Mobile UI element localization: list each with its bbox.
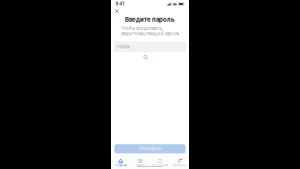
staticText: Чтобы продолжить, введите ваш текущий па… xyxy=(121,26,179,36)
staticText: Отправить xyxy=(139,146,161,151)
staticText: 9:41 xyxy=(116,1,125,7)
button[interactable]: Поддержка xyxy=(150,159,169,167)
button[interactable]: Закрыть xyxy=(113,8,120,14)
staticText: Поддержка xyxy=(152,164,168,167)
staticText: Профиль xyxy=(173,164,186,167)
button[interactable]: Главная xyxy=(111,159,130,167)
staticText: Пароль xyxy=(117,44,130,49)
staticText: Каталог xyxy=(135,164,145,167)
button[interactable]: Отправить xyxy=(114,144,186,153)
staticText: Главная xyxy=(115,164,126,167)
staticText: Введите пароль xyxy=(125,16,175,23)
button[interactable]: Каталог xyxy=(130,159,150,167)
button[interactable]: Профиль xyxy=(169,159,189,167)
